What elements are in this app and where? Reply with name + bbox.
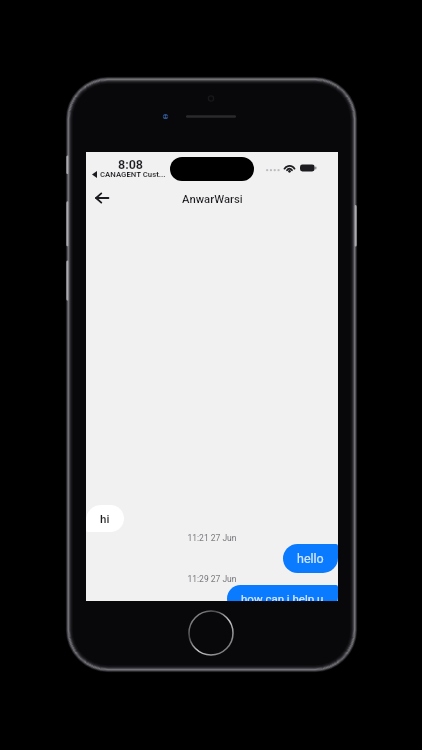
staticText: AnwarWarsi [182, 193, 243, 206]
button[interactable]: Back [88, 184, 116, 212]
button[interactable]: how can i help u [227, 585, 338, 601]
staticText: 11:29 27 Jun [86, 574, 338, 584]
staticText: 11:21 27 Jun [86, 533, 338, 543]
staticText: 8:08 [118, 157, 144, 172]
staticText: hi [100, 512, 110, 525]
button[interactable]: hello [283, 544, 338, 573]
staticText: CANAGENT Cust... [100, 170, 166, 179]
staticText: hello [297, 551, 324, 566]
staticText: how can i help u [241, 592, 324, 601]
button[interactable]: hi [86, 505, 124, 532]
